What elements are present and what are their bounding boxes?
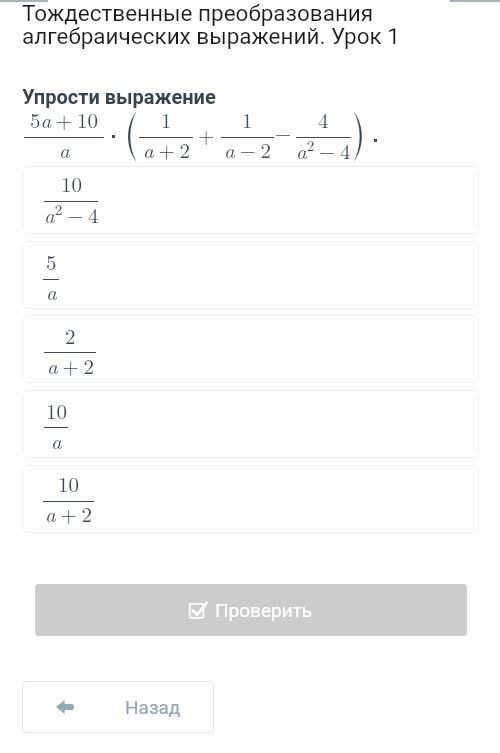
staticText: a: [46, 276, 57, 306]
staticText: 10: [61, 168, 82, 198]
staticText: Тождественные преобразования алгебраичес…: [22, 0, 400, 50]
staticText: 10: [46, 395, 67, 425]
staticText: Проверить: [215, 599, 313, 621]
button[interactable]: [22, 315, 479, 383]
staticText: a: [51, 425, 62, 455]
staticText: 5: [46, 246, 57, 276]
staticText: 5a + 10: [30, 104, 98, 134]
staticText: 2: [65, 320, 76, 350]
staticText: a2 − 4: [296, 134, 351, 165]
staticText: a − 2: [224, 134, 271, 164]
staticText: 1: [161, 104, 172, 134]
button[interactable]: [22, 166, 479, 234]
other: Назад: [56, 700, 74, 714]
button[interactable]: [22, 390, 479, 458]
staticText: −: [275, 117, 292, 147]
button[interactable]: [22, 241, 479, 309]
staticText: 1: [242, 104, 253, 134]
staticText: 4: [318, 104, 329, 134]
staticText: a + 2: [45, 498, 92, 528]
staticText: Упрости выражение: [22, 85, 216, 108]
button[interactable]: Проверить: [35, 584, 467, 636]
button[interactable]: Назад: [22, 681, 214, 733]
staticText: +: [198, 119, 215, 149]
staticText: a + 2: [143, 134, 190, 164]
staticText: 10: [58, 468, 79, 498]
staticText: a2 − 4: [44, 198, 99, 229]
button[interactable]: [22, 465, 479, 533]
staticText: a + 2: [47, 350, 94, 380]
staticText: Назад: [125, 696, 181, 718]
staticText: a: [59, 134, 70, 164]
